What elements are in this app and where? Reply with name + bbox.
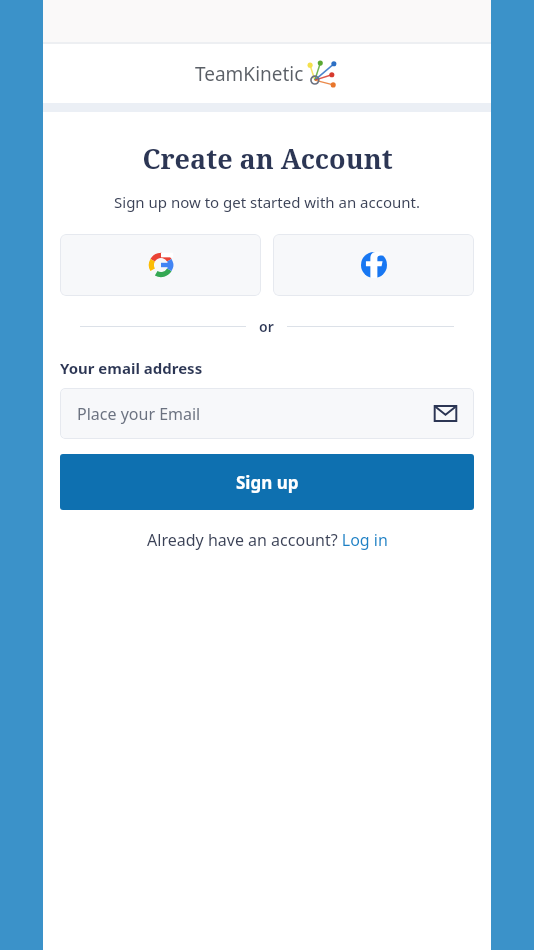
staticText: TeamKinetic	[195, 61, 304, 87]
button[interactable]: Sign up with Facebook	[273, 234, 474, 296]
staticText: Already have an account? Log in	[147, 529, 388, 551]
staticText: Sign up now to get started with an accou…	[114, 192, 420, 212]
button[interactable]: Sign up with Google	[60, 234, 261, 296]
staticText: Create an Account	[142, 140, 393, 177]
button[interactable]: Already have an account? Log in	[145, 527, 390, 553]
button[interactable]: Sign up	[60, 454, 474, 510]
staticText: Your email address	[60, 358, 203, 378]
staticText: Sign up	[236, 471, 299, 494]
button[interactable]: Place your Email	[60, 388, 474, 439]
staticText: or	[259, 317, 274, 336]
staticText: Place your Email	[77, 403, 434, 425]
